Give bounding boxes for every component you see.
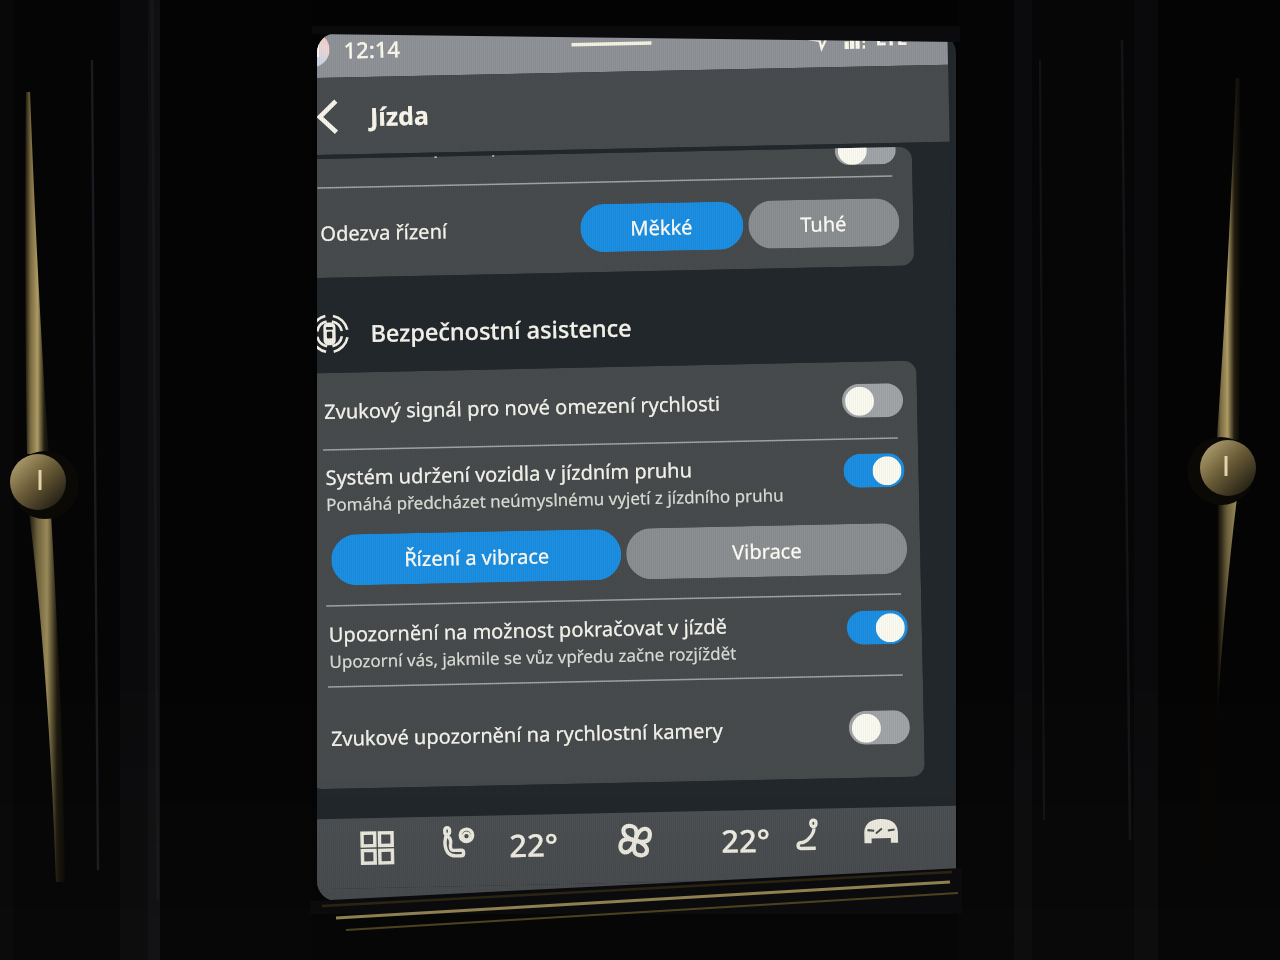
- button[interactable]: Passenger temperature 22 degrees: [711, 814, 780, 867]
- button[interactable]: Profile: [317, 33, 330, 67]
- staticText: Tuhé: [800, 210, 848, 238]
- button[interactable]: Systém udržení vozidla v jízdním pruhu: [317, 439, 921, 606]
- button[interactable]: Driver temperature 22 degrees: [499, 818, 568, 871]
- staticText: Zvukový signál pro nové omezení rychlost…: [324, 387, 834, 425]
- button[interactable]: Upozornění na možnost pokračovat v jízdě: [317, 594, 923, 687]
- staticText: Bezpečnostní asistence: [370, 311, 633, 349]
- button[interactable]: Zvukové upozornění na rychlostní kamery: [317, 675, 925, 789]
- button[interactable]: Zvukový signál pro nové omezení rychlost…: [317, 361, 918, 450]
- button[interactable]: Passenger seat heating: [787, 812, 832, 857]
- staticText: Měkké: [630, 213, 694, 241]
- staticText: Vibrace: [732, 537, 802, 565]
- staticText: M: [317, 36, 322, 63]
- button[interactable]: Back: [317, 92, 352, 141]
- staticText: Systém udržení vozidla v jízdním pruhu: [325, 456, 693, 491]
- button[interactable]: Odezva řízení: [319, 177, 900, 278]
- button[interactable]: Climate: [859, 811, 904, 856]
- button[interactable]: Switch off: [835, 147, 896, 165]
- staticText: Upozorní vás, jakmile se vůz vpředu začn…: [329, 641, 736, 673]
- staticText: Odezva řízení: [320, 217, 448, 247]
- button[interactable]: Apps: [355, 825, 400, 870]
- staticText: Adaptivní podvozek s řízením tlumení: [397, 150, 749, 159]
- button[interactable]: Řízení a vibrace: [331, 529, 622, 586]
- button[interactable]: Driver seat heating: [438, 820, 483, 865]
- button[interactable]: Měkké: [580, 201, 744, 253]
- staticText: LTE: [875, 33, 908, 51]
- staticText: 22°: [721, 819, 771, 862]
- staticText: 22°: [509, 823, 559, 866]
- staticText: Jízda: [370, 98, 429, 133]
- staticText: Zvukové upozornění na rychlostní kamery: [331, 714, 841, 752]
- button[interactable]: Switch on: [846, 610, 908, 645]
- button[interactable]: Switch on: [843, 453, 905, 488]
- button[interactable]: Switch off: [848, 710, 910, 745]
- staticText: Pomáhá předcházet neúmyslnému vyjetí z j…: [326, 483, 784, 516]
- button[interactable]: Switch off: [842, 383, 903, 418]
- staticText: Upozornění na možnost pokračovat v jízdě: [328, 613, 728, 648]
- button[interactable]: Vibrace: [626, 523, 908, 580]
- staticText: 12:14: [343, 33, 401, 64]
- button[interactable]: Tuhé: [748, 198, 900, 249]
- staticText: Řízení a vibrace: [404, 542, 549, 572]
- button[interactable]: Fan speed: [613, 818, 658, 863]
